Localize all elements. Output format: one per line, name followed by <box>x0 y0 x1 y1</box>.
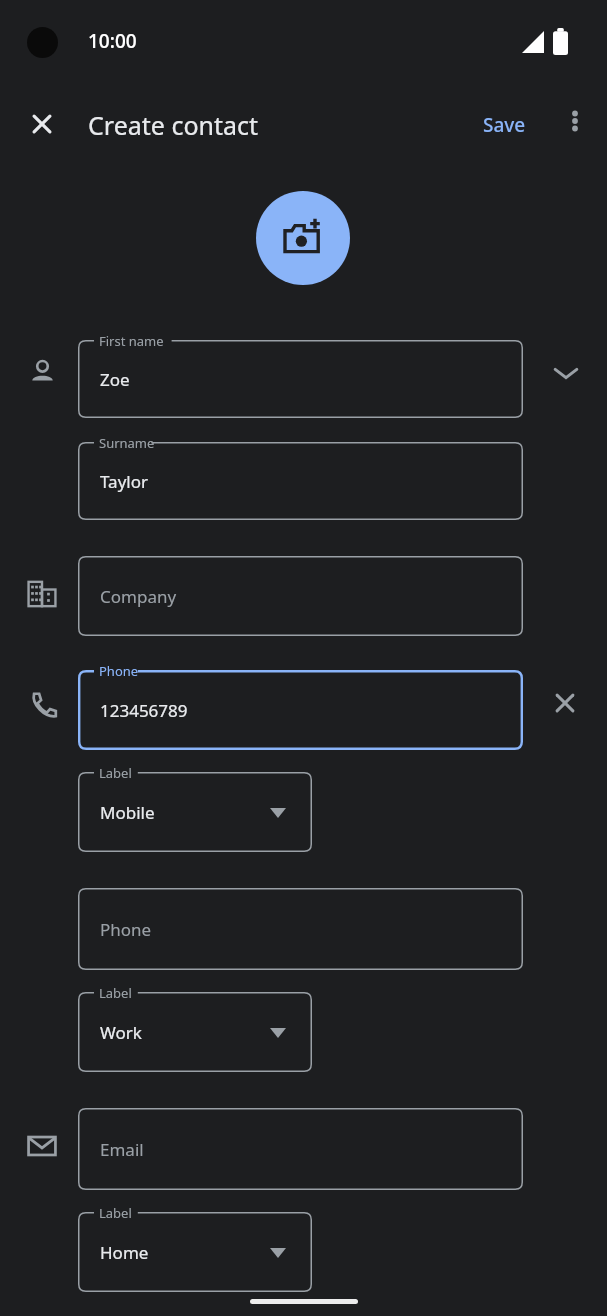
button[interactable]: Email label Home <box>78 1212 312 1292</box>
button[interactable]: Phone <box>78 670 523 750</box>
staticText: 10:00 <box>88 28 137 54</box>
button[interactable]: Phone label Work <box>78 992 312 1072</box>
staticText: Mobile <box>100 801 155 824</box>
staticText: Taylor <box>100 470 148 493</box>
button[interactable]: Close <box>22 104 62 144</box>
button[interactable]: Email <box>78 1108 523 1190</box>
staticText: Label <box>99 1204 132 1222</box>
button[interactable]: Surname <box>78 442 523 520</box>
staticText: Create contact <box>88 108 259 142</box>
button[interactable]: Expand name fields <box>548 355 584 391</box>
staticText: Work <box>100 1021 142 1044</box>
staticText: First name <box>99 332 164 350</box>
button[interactable]: First name <box>78 340 523 418</box>
button[interactable]: More options <box>558 104 592 138</box>
staticText: Label <box>99 984 132 1002</box>
staticText: Company <box>100 585 177 608</box>
button[interactable]: Phone 2 <box>78 888 523 970</box>
staticText: Email <box>100 1138 144 1161</box>
button[interactable]: Add photo <box>256 191 350 285</box>
button[interactable]: Save <box>483 112 526 138</box>
staticText: Surname <box>99 434 155 452</box>
staticText: Phone <box>99 662 139 680</box>
staticText: Phone <box>100 918 152 941</box>
staticText: Save <box>483 112 526 138</box>
staticText: 123456789 <box>100 699 188 722</box>
staticText: Zoe <box>100 368 130 391</box>
staticText: Home <box>100 1241 149 1264</box>
button[interactable]: Clear phone number <box>548 686 582 720</box>
staticText: Label <box>99 764 132 782</box>
button[interactable]: Company <box>78 556 523 636</box>
button[interactable]: Phone label Mobile <box>78 772 312 852</box>
